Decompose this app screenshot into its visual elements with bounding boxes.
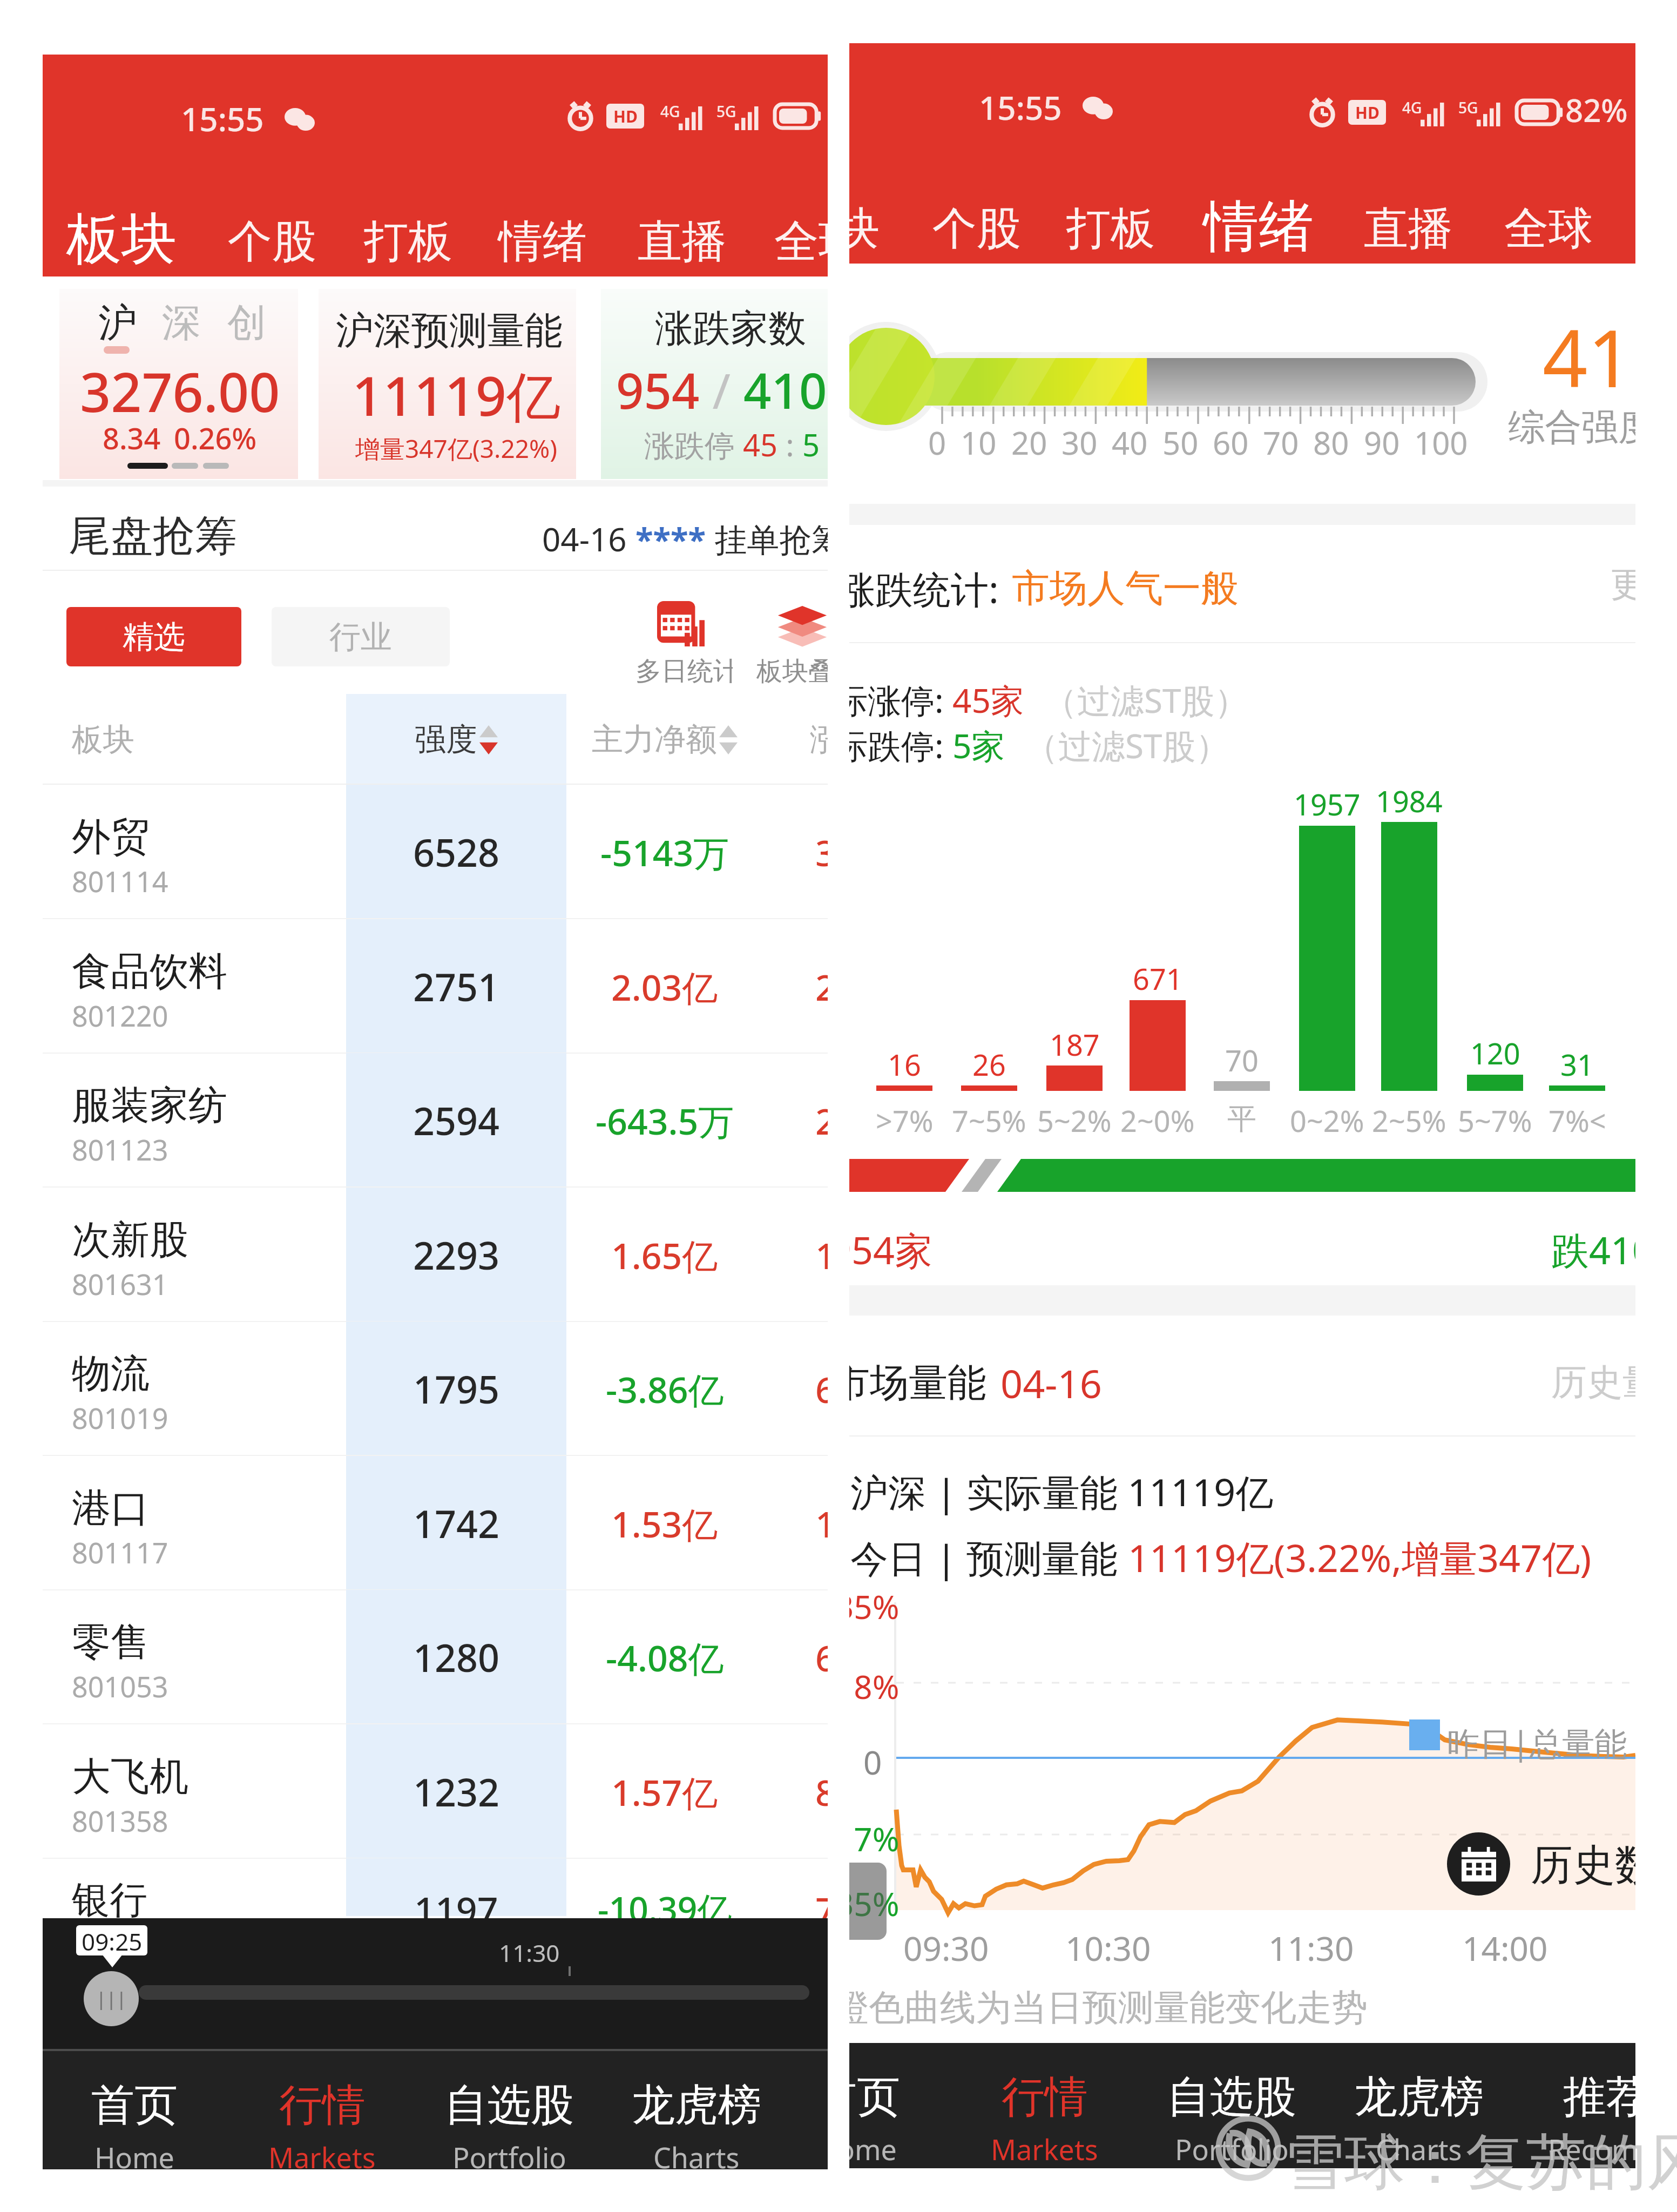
button[interactable]: 推荐 bbox=[1512, 2043, 1635, 2168]
button[interactable]: 龙虎榜 bbox=[603, 2051, 790, 2169]
staticText: 0 bbox=[863, 1740, 882, 1784]
button[interactable]: 打板 bbox=[1066, 201, 1155, 257]
staticText: 全球 bbox=[1504, 201, 1593, 257]
staticText: Markets bbox=[268, 2138, 376, 2169]
staticText: 1280 bbox=[413, 1631, 500, 1683]
staticText: 强度 bbox=[415, 720, 477, 759]
staticText: 16 bbox=[888, 1044, 921, 1084]
staticText: 行业 bbox=[329, 617, 392, 657]
button[interactable]: 打板 bbox=[364, 214, 452, 269]
staticText: -4.08亿 bbox=[606, 1633, 724, 1682]
staticText: 3276.00 bbox=[80, 354, 280, 428]
button[interactable]: 个股 bbox=[932, 201, 1021, 257]
button[interactable]: 外贸 bbox=[43, 785, 828, 919]
staticText: 首页 bbox=[849, 2070, 900, 2125]
staticText: 全球 bbox=[774, 214, 828, 269]
button[interactable]: 龙虎榜 bbox=[1325, 2043, 1513, 2168]
staticText: 4G bbox=[660, 101, 680, 122]
staticText: 昨日|总量能 107 bbox=[1447, 1721, 1635, 1765]
button[interactable]: 全球 bbox=[774, 214, 828, 269]
staticText: -3.86亿 bbox=[606, 1365, 724, 1413]
staticText: -5143万 bbox=[600, 828, 729, 876]
staticText: 14:00 bbox=[1462, 1925, 1548, 1971]
staticText: 45家 bbox=[952, 677, 1024, 723]
staticText: 直播 bbox=[1364, 201, 1452, 257]
staticText: 671 bbox=[1133, 959, 1183, 999]
button[interactable]: 精选 bbox=[66, 607, 241, 666]
staticText: Recomm bbox=[1548, 2130, 1635, 2168]
button[interactable]: 个股 bbox=[228, 214, 316, 269]
button[interactable]: 行业 bbox=[272, 607, 450, 666]
button[interactable]: 次新股 bbox=[43, 1188, 828, 1322]
button[interactable]: 沪深预测量能 bbox=[319, 289, 576, 479]
staticText: 增量347亿(3.22%) bbox=[355, 431, 558, 466]
staticText: 市场量能 bbox=[849, 1359, 986, 1408]
button[interactable]: 首页 bbox=[849, 2043, 951, 2168]
staticText: 深 bbox=[162, 299, 201, 348]
staticText: 8 bbox=[815, 1768, 828, 1816]
button[interactable]: 物流 bbox=[43, 1321, 828, 1456]
staticText: 801053 bbox=[72, 1667, 168, 1705]
button[interactable]: 直播 bbox=[1364, 201, 1452, 257]
button[interactable]: 零售 bbox=[43, 1590, 828, 1724]
staticText: 11:30 bbox=[1268, 1925, 1354, 1971]
staticText: 801123 bbox=[72, 1130, 168, 1169]
staticText: 15:55 bbox=[181, 97, 264, 141]
button[interactable]: 沪 bbox=[59, 289, 298, 479]
staticText: 沪深预测量能 bbox=[336, 307, 563, 355]
staticText: 次新股 bbox=[72, 1216, 188, 1265]
staticText: （过滤ST股） bbox=[1025, 723, 1229, 768]
staticText: 5家 bbox=[952, 723, 1005, 768]
staticText: 1 bbox=[815, 1499, 828, 1548]
staticText: 1.53亿 bbox=[611, 1499, 718, 1548]
staticText: 80 bbox=[1313, 421, 1349, 464]
staticText: 1795 bbox=[413, 1363, 500, 1414]
button[interactable]: 港口 bbox=[43, 1456, 828, 1590]
staticText: 2293 bbox=[413, 1229, 500, 1280]
button[interactable]: 行情 bbox=[228, 2051, 416, 2169]
staticText: : bbox=[778, 424, 802, 465]
staticText: 食品饮料 bbox=[72, 947, 227, 996]
staticText: 40 bbox=[1112, 421, 1148, 464]
staticText: 打板 bbox=[1066, 201, 1155, 257]
staticText: 187 bbox=[1050, 1024, 1100, 1064]
button[interactable]: 时间滑块 bbox=[84, 1971, 139, 2026]
button[interactable]: 行情 bbox=[950, 2043, 1138, 2168]
button[interactable]: 情绪 bbox=[498, 214, 587, 269]
button[interactable]: 首页 bbox=[43, 2051, 228, 2169]
button[interactable]: 侧边按钮 bbox=[849, 1863, 887, 1940]
button[interactable]: 食品饮料 bbox=[43, 919, 828, 1054]
staticText: 个股 bbox=[228, 214, 316, 269]
staticText: 1.57亿 bbox=[611, 1768, 718, 1816]
staticText: 橙色曲线为当日预测量能变化走势 bbox=[849, 1985, 1368, 2030]
staticText: Portfolio bbox=[1175, 2130, 1289, 2168]
button[interactable]: 板块 bbox=[66, 205, 177, 274]
staticText: 45 bbox=[743, 424, 778, 465]
staticText: 板块 bbox=[72, 720, 134, 759]
button[interactable]: 历史数据 bbox=[1447, 1832, 1510, 1896]
staticText: 120 bbox=[1470, 1033, 1520, 1073]
button[interactable]: 大飞机 bbox=[43, 1724, 828, 1859]
button[interactable]: 自选股 bbox=[415, 2051, 603, 2169]
button[interactable]: 多日统计 bbox=[635, 598, 733, 690]
staticText: 行情 bbox=[1002, 2070, 1088, 2125]
staticText: 综合强度 bbox=[1508, 404, 1635, 451]
staticText: 自选股 bbox=[444, 2078, 574, 2133]
button[interactable]: 涨跌家数 bbox=[601, 289, 828, 479]
button[interactable]: 自选股 bbox=[1138, 2043, 1326, 2168]
staticText: 物流 bbox=[72, 1350, 150, 1399]
staticText: 35% bbox=[849, 1881, 900, 1926]
staticText: 更 bbox=[1611, 563, 1635, 606]
button[interactable]: 情绪 bbox=[1203, 192, 1314, 261]
button[interactable]: 直播 bbox=[638, 214, 726, 269]
staticText: 50 bbox=[1162, 421, 1199, 464]
staticText: 0.26% bbox=[174, 418, 257, 458]
staticText: HD bbox=[613, 105, 638, 127]
staticText: 7~5% bbox=[952, 1101, 1026, 1141]
button[interactable]: 服装家纺 bbox=[43, 1053, 828, 1188]
button[interactable]: 板块叠加 bbox=[756, 598, 828, 690]
button[interactable]: 全球 bbox=[1504, 201, 1593, 257]
button[interactable]: 块 bbox=[849, 201, 880, 257]
staticText: 10 bbox=[961, 421, 997, 464]
